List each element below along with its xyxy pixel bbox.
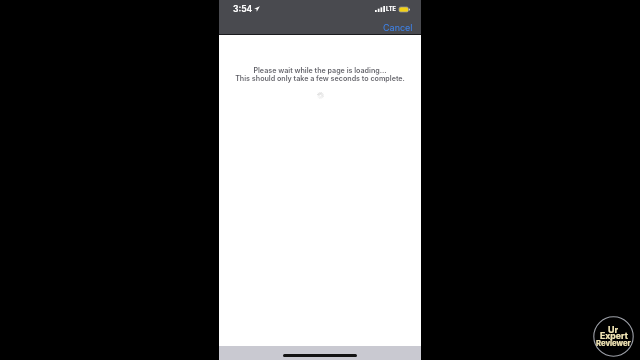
staticText: Expert <box>600 331 628 342</box>
staticText: LTE <box>386 6 396 13</box>
staticText: Cancel <box>383 22 413 33</box>
staticText: Ur <box>608 324 619 335</box>
staticText: 3:54 <box>233 4 253 14</box>
staticText: Please wait while the page is loading...… <box>235 66 405 83</box>
button[interactable]: Cancel <box>383 22 421 34</box>
staticText: Reviewer <box>596 339 631 348</box>
